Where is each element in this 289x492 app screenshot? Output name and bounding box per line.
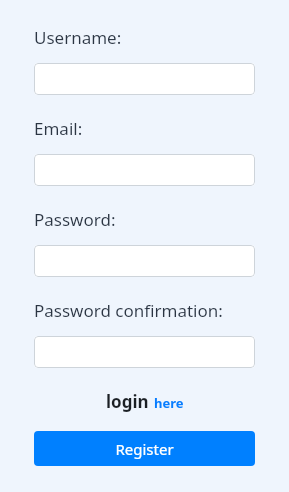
button[interactable]: here: [154, 394, 184, 413]
button[interactable]: [34, 245, 255, 277]
staticText: login: [106, 390, 149, 413]
staticText: here: [154, 394, 184, 412]
button[interactable]: [34, 154, 255, 186]
staticText: Email:: [34, 117, 83, 140]
staticText: Register: [115, 439, 174, 459]
button[interactable]: [34, 336, 255, 368]
staticText: Username:: [34, 26, 122, 49]
staticText: Password confirmation:: [34, 299, 223, 322]
button[interactable]: Register: [34, 431, 255, 466]
button[interactable]: [34, 63, 255, 95]
staticText: Password:: [34, 208, 116, 231]
